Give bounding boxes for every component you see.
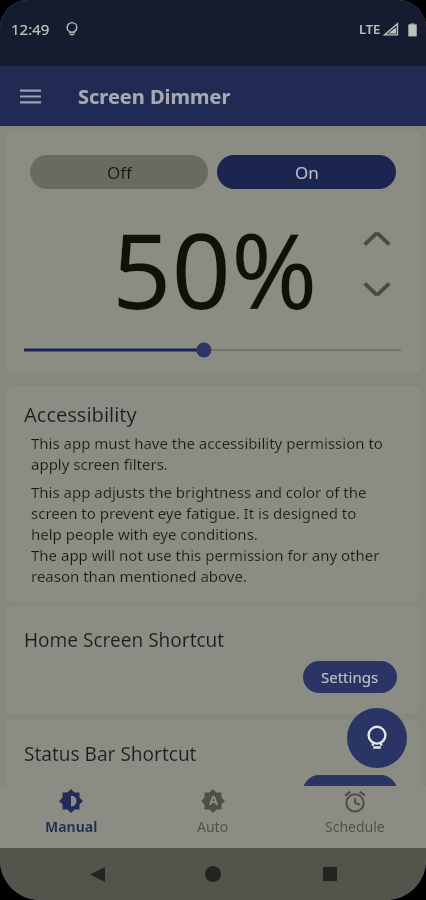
button[interactable]: Recents <box>310 854 350 894</box>
button[interactable]: Toggle dimmer <box>347 708 407 768</box>
staticText: 50% <box>112 198 318 340</box>
staticText: Accessibility <box>24 401 137 428</box>
staticText: Settings <box>321 667 379 687</box>
staticText: Schedule <box>325 817 385 836</box>
staticText: The app will not use this permission for… <box>31 545 386 587</box>
button[interactable]: Back <box>77 854 117 894</box>
button[interactable]: Settings <box>303 661 397 693</box>
button[interactable]: Menu <box>0 66 60 126</box>
button[interactable]: Home <box>193 854 233 894</box>
staticText: Home Screen Shortcut <box>24 627 225 653</box>
staticText: On <box>295 161 319 184</box>
staticText: Manual <box>45 817 98 836</box>
staticText: Settings <box>321 781 379 801</box>
staticText: A <box>209 791 218 809</box>
staticText: LTE <box>359 20 381 38</box>
staticText: Auto <box>197 817 229 836</box>
button[interactable]: Schedule <box>284 786 426 848</box>
button[interactable]: Settings <box>303 775 397 807</box>
button[interactable]: Manual <box>0 786 142 848</box>
staticText: Status Bar Shortcut <box>24 741 197 767</box>
button[interactable]: A <box>142 786 284 848</box>
staticText: This app must have the accessibility per… <box>31 433 386 475</box>
button[interactable] <box>24 336 401 364</box>
staticText: 12:49 <box>11 19 50 39</box>
button[interactable]: Decrease <box>355 267 399 311</box>
button[interactable]: Off <box>30 155 208 189</box>
staticText: Off <box>107 161 132 184</box>
button[interactable]: On <box>217 155 396 189</box>
staticText: Screen Dimmer <box>78 83 231 110</box>
button[interactable]: Increase <box>355 217 399 261</box>
staticText: This app adjusts the brightness and colo… <box>31 482 386 545</box>
